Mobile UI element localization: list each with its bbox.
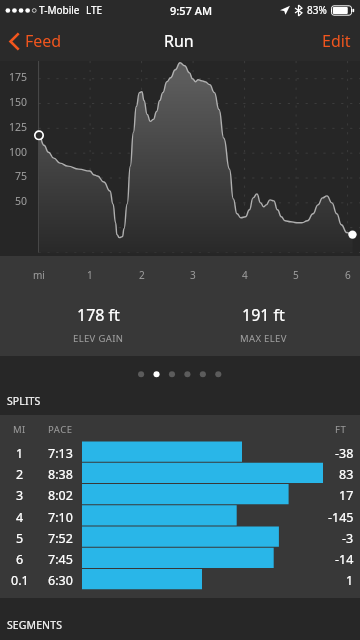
staticText: 4 [16,509,24,526]
staticText: -14 [335,551,354,568]
staticText: -145 [328,509,354,526]
button[interactable]: 2 [0,464,360,485]
staticText: Run [164,30,194,52]
staticText: 17 [339,487,354,504]
staticText: 2 [16,466,24,483]
button[interactable]: Feed [0,24,68,58]
staticText: LTE [86,3,103,17]
staticText: T-Mobile [39,3,80,17]
staticText: -3 [342,530,354,547]
button[interactable]: 191 ft [203,294,323,356]
staticText: 1 [346,572,354,589]
staticText: 3 [16,487,24,504]
staticText: 50 [15,194,28,208]
staticText: 75 [15,169,28,183]
staticText: 125 [9,120,28,134]
staticText: FT [335,423,347,436]
staticText: 150 [9,95,28,109]
staticText: 9:57 AM [170,3,213,18]
staticText: MAX ELEV [240,332,287,345]
staticText: -38 [335,445,354,462]
staticText: MI [13,423,26,436]
staticText: SEGMENTS [7,618,62,632]
staticText: 1 [16,445,24,462]
staticText: 83 [339,466,354,483]
staticText: 100 [9,145,28,159]
staticText: SPLITS [7,394,41,408]
staticText: 6:30 [48,572,73,589]
staticText: 191 ft [242,304,285,326]
button[interactable]: Edit [313,24,360,58]
button[interactable]: 4 [0,507,360,528]
staticText: 6 [16,551,24,568]
staticText: 5 [16,530,24,547]
staticText: Edit [322,30,351,52]
staticText: mi [33,268,45,282]
button[interactable]: 3 [0,485,360,506]
staticText: 7:45 [48,551,73,568]
button[interactable]: 5 [0,528,360,549]
staticText: 7:52 [48,530,73,547]
staticText: 175 [9,70,28,84]
staticText: ELEV GAIN [73,332,124,345]
button[interactable]: 178 ft [38,294,158,356]
staticText: 1 [87,268,93,282]
staticText: 4 [242,268,248,282]
staticText: 3 [190,268,196,282]
staticText: 8:38 [48,466,73,483]
staticText: 178 ft [77,304,120,326]
button[interactable]: 0.1 [0,570,360,591]
staticText: 8:02 [48,487,73,504]
staticText: 0.1 [11,572,29,589]
staticText: 6 [345,268,351,282]
button[interactable]: 6 [0,549,360,570]
staticText: 5 [293,268,299,282]
button[interactable]: 1 [0,443,360,464]
staticText: 2 [139,268,145,282]
staticText: Feed [25,30,62,52]
staticText: 83% [307,3,327,17]
staticText: PACE [48,423,73,436]
staticText: 7:13 [48,445,73,462]
staticText: 7:10 [48,509,73,526]
